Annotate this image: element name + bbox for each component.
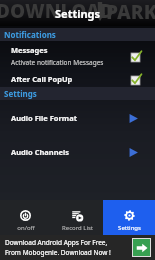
- other: Open ad: [133, 239, 150, 256]
- button[interactable]: Record List: [51, 200, 103, 235]
- staticText: Settings: [4, 88, 37, 99]
- staticText: Audio Channels: [11, 147, 133, 157]
- staticText: Record List: [62, 224, 93, 232]
- staticText: After Call PopUp: [11, 74, 73, 84]
- staticText: Settings: [118, 224, 141, 232]
- staticText: PARK: [106, 0, 155, 25]
- staticText: Messages: [11, 45, 48, 55]
- staticText: on/off: [17, 224, 35, 232]
- staticText: From Mobogenie. Download Now !: [5, 248, 111, 257]
- button[interactable]: Download Android Apps For Free,: [0, 235, 155, 260]
- button[interactable]: Audio Channels: [0, 135, 155, 169]
- staticText: Activate notification Messages: [11, 58, 104, 67]
- button[interactable]: After Call PopUp: [0, 71, 155, 87]
- button[interactable]: Messages: [0, 41, 155, 71]
- button[interactable]: Settings: [103, 200, 155, 235]
- button[interactable]: Audio File Format: [0, 101, 155, 135]
- staticText: Settings: [55, 6, 101, 21]
- staticText: DOWNLOAD: [0, 0, 114, 24]
- staticText: Audio File Format: [11, 113, 133, 123]
- staticText: Notifications: [4, 29, 56, 40]
- button[interactable]: on/off: [0, 200, 51, 235]
- staticText: Download Android Apps For Free,: [5, 238, 108, 247]
